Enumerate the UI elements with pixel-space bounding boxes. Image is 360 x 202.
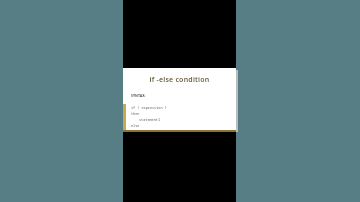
staticText: else — [131, 123, 140, 128]
staticText: if -else condition — [123, 75, 236, 85]
staticText: SYNTAX: — [131, 93, 146, 98]
staticText: if ( expression ) — [131, 105, 167, 110]
staticText: then — [131, 111, 140, 116]
staticText: statement1 — [139, 117, 160, 122]
button[interactable]: Video player — [123, 0, 236, 202]
